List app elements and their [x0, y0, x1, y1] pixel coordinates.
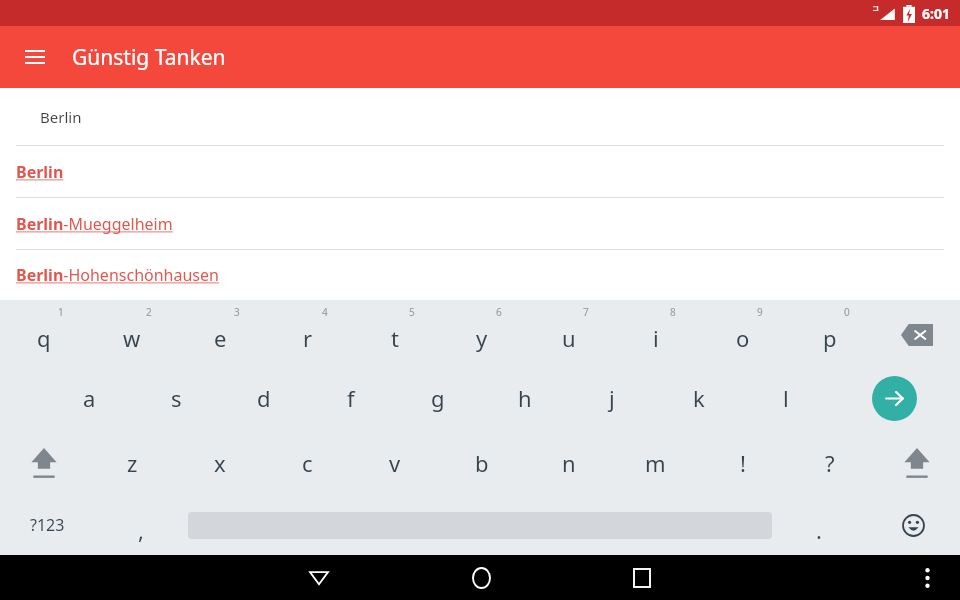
- button[interactable]: f: [307, 366, 394, 430]
- staticText: 9: [757, 305, 763, 319]
- staticText: q: [37, 323, 51, 353]
- button[interactable]: x: [176, 430, 264, 495]
- staticText: 4: [322, 305, 328, 319]
- staticText: k: [693, 383, 705, 413]
- button[interactable]: Berlin: [0, 146, 960, 197]
- button[interactable]: s: [133, 366, 220, 430]
- staticText: d: [257, 383, 271, 413]
- staticText: 7: [583, 305, 589, 319]
- button[interactable]: 2: [88, 300, 176, 366]
- button[interactable]: Enter: [829, 366, 960, 430]
- button[interactable]: Emoji: [866, 495, 960, 555]
- button[interactable]: Berlin-Mueggelheim: [0, 198, 960, 249]
- button[interactable]: Berlin-Hohenschönhausen: [0, 250, 960, 300]
- staticText: h: [518, 383, 532, 413]
- button[interactable]: 7: [525, 300, 612, 366]
- staticText: i: [653, 323, 659, 353]
- staticText: Berlin-Hohenschönhausen: [16, 264, 219, 286]
- staticText: r: [303, 323, 313, 353]
- button[interactable]: 1: [0, 300, 88, 366]
- staticText: 3: [234, 305, 240, 319]
- staticText: o: [736, 323, 750, 353]
- button[interactable]: c: [264, 430, 351, 495]
- button[interactable]: ,: [94, 495, 188, 555]
- staticText: .: [816, 515, 822, 545]
- staticText: x: [214, 448, 226, 478]
- staticText: 6:01: [922, 4, 950, 23]
- staticText: g: [431, 383, 445, 413]
- staticText: t: [391, 323, 399, 353]
- button[interactable]: 6: [438, 300, 525, 366]
- button[interactable]: Shift: [873, 430, 960, 495]
- staticText: !: [740, 448, 746, 478]
- staticText: 2: [146, 305, 152, 319]
- staticText: j: [609, 383, 615, 413]
- staticText: e: [214, 323, 227, 353]
- button[interactable]: n: [525, 430, 612, 495]
- staticText: y: [476, 323, 488, 353]
- button[interactable]: Home: [458, 555, 504, 600]
- staticText: f: [347, 383, 355, 413]
- staticText: b: [475, 448, 489, 478]
- button[interactable]: Space: [188, 495, 772, 555]
- staticText: w: [123, 323, 141, 353]
- button[interactable]: 5: [351, 300, 438, 366]
- staticText: n: [562, 448, 576, 478]
- button[interactable]: Open navigation drawer: [16, 38, 54, 76]
- staticText: 6: [496, 305, 502, 319]
- button[interactable]: v: [351, 430, 438, 495]
- button[interactable]: Recent apps: [619, 555, 665, 600]
- staticText: s: [171, 383, 182, 413]
- staticText: Berlin: [40, 107, 82, 127]
- button[interactable]: k: [655, 366, 742, 430]
- staticText: ?: [825, 448, 835, 478]
- button[interactable]: l: [742, 366, 829, 430]
- staticText: ?123: [30, 514, 65, 536]
- staticText: z: [127, 448, 138, 478]
- button[interactable]: ?123: [0, 495, 94, 555]
- staticText: Berlin-Mueggelheim: [16, 213, 173, 235]
- staticText: Berlin: [16, 161, 64, 183]
- button[interactable]: !: [699, 430, 786, 495]
- staticText: l: [783, 383, 789, 413]
- staticText: c: [302, 448, 313, 478]
- button[interactable]: .: [772, 495, 866, 555]
- staticText: m: [645, 448, 666, 478]
- staticText: 0: [844, 305, 850, 319]
- staticText: v: [389, 448, 401, 478]
- button[interactable]: g: [394, 366, 481, 430]
- staticText: 8: [670, 305, 676, 319]
- staticText: ,: [138, 515, 144, 545]
- staticText: 5: [409, 305, 415, 319]
- button[interactable]: b: [438, 430, 525, 495]
- staticText: u: [562, 323, 576, 353]
- button[interactable]: ?: [786, 430, 873, 495]
- button[interactable]: 9: [699, 300, 786, 366]
- staticText: Günstig Tanken: [72, 43, 226, 72]
- button[interactable]: Shift: [0, 430, 88, 495]
- button[interactable]: 4: [264, 300, 351, 366]
- button[interactable]: 3: [176, 300, 264, 366]
- staticText: p: [823, 323, 837, 353]
- button[interactable]: 0: [786, 300, 873, 366]
- button[interactable]: z: [88, 430, 176, 495]
- button[interactable]: m: [612, 430, 699, 495]
- button[interactable]: Backspace: [873, 300, 960, 366]
- button[interactable]: a: [45, 366, 133, 430]
- button[interactable]: 8: [612, 300, 699, 366]
- button[interactable]: j: [568, 366, 655, 430]
- button[interactable]: Back: [296, 555, 342, 600]
- button[interactable]: More options: [904, 555, 950, 600]
- staticText: a: [83, 383, 96, 413]
- button[interactable]: d: [220, 366, 307, 430]
- button[interactable]: h: [481, 366, 568, 430]
- staticText: 1: [58, 305, 64, 319]
